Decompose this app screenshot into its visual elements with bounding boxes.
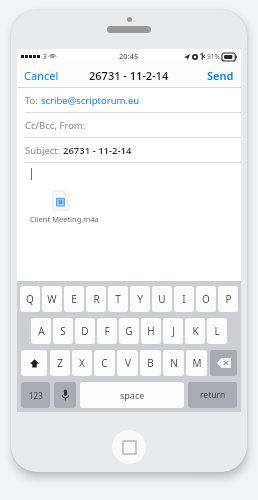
button[interactable]: F [97,318,117,344]
button[interactable]: S [53,318,73,344]
staticText: E [71,292,77,306]
staticText: N [170,356,178,370]
button[interactable]: W [42,286,62,312]
staticText: return [200,389,226,401]
staticText: scribe@scriptorum.eu [41,94,140,107]
button[interactable]: Home [112,430,146,464]
button[interactable]: Shift [21,350,47,376]
button[interactable]: Send [200,63,241,88]
staticText: Subject: [25,144,63,157]
staticText: W [47,292,57,306]
button[interactable]: M [186,350,207,376]
button[interactable]: C [94,350,115,376]
button[interactable]: H [141,318,161,344]
staticText: 26731 - 11-2-14 [89,68,169,83]
staticText: Cancel [24,68,59,83]
button[interactable]: Subject: [17,138,241,163]
button[interactable]: Q [20,286,40,312]
button[interactable]: Cancel [17,63,66,88]
button[interactable]: E [64,286,84,312]
staticText: K [192,324,199,338]
staticText: 91% [207,52,220,61]
button[interactable]: return [188,382,237,408]
staticText: space [120,389,145,401]
staticText: U [158,292,166,306]
button[interactable]: 123 [21,382,50,408]
staticText: 3 [43,52,47,61]
staticText: Send [207,68,234,83]
staticText: F [104,324,110,338]
staticText: X [79,356,85,370]
staticText: C [101,356,108,370]
staticText: S [60,324,66,338]
button[interactable]: X [72,350,92,376]
staticText: 20:45 [119,51,139,61]
staticText: R [93,292,100,306]
staticText: To: [25,94,41,107]
button[interactable]: T [108,286,128,312]
staticText: L [214,324,220,338]
staticText: Cc/Bcc, From: [25,119,86,132]
button[interactable]: O [196,286,216,312]
staticText: O [202,292,210,306]
staticText: 26731 - 11-2-14 [63,144,132,157]
staticText: J [172,324,175,338]
button[interactable]: Cc/Bcc, From: [17,113,241,138]
button[interactable]: L [207,318,227,344]
button[interactable]: Dictate [54,382,76,408]
staticText: 123 [29,390,43,401]
button[interactable]: N [163,350,184,376]
staticText: B [147,356,154,370]
button[interactable]: Y [130,286,150,312]
staticText: Q [26,292,34,306]
button[interactable]: Z [50,350,70,376]
button[interactable]: To: [17,88,241,113]
staticText: Client Meeting.m4a [30,214,99,224]
button[interactable]: space [80,382,184,408]
staticText: Z [57,356,63,370]
staticText: Y [137,292,143,306]
button[interactable]: U [152,286,172,312]
staticText: H [147,324,155,338]
button[interactable]: K [185,318,205,344]
staticText: P [225,292,232,306]
button[interactable]: Client Meeting.m4a [17,163,241,281]
button[interactable]: G [119,318,139,344]
button[interactable]: B [140,350,161,376]
staticText: M [192,356,202,370]
staticText: D [81,324,89,338]
button[interactable]: A [31,318,51,344]
button[interactable]: R [86,286,106,312]
button[interactable]: V [117,350,138,376]
button[interactable]: J [163,318,183,344]
button[interactable]: I [174,286,194,312]
button[interactable]: P [218,286,238,312]
staticText: T [115,292,121,306]
staticText: A [38,324,45,338]
button[interactable]: D [75,318,95,344]
button[interactable]: Backspace [210,350,237,376]
staticText: G [125,324,133,338]
staticText: I [182,292,186,306]
staticText: V [125,356,131,370]
